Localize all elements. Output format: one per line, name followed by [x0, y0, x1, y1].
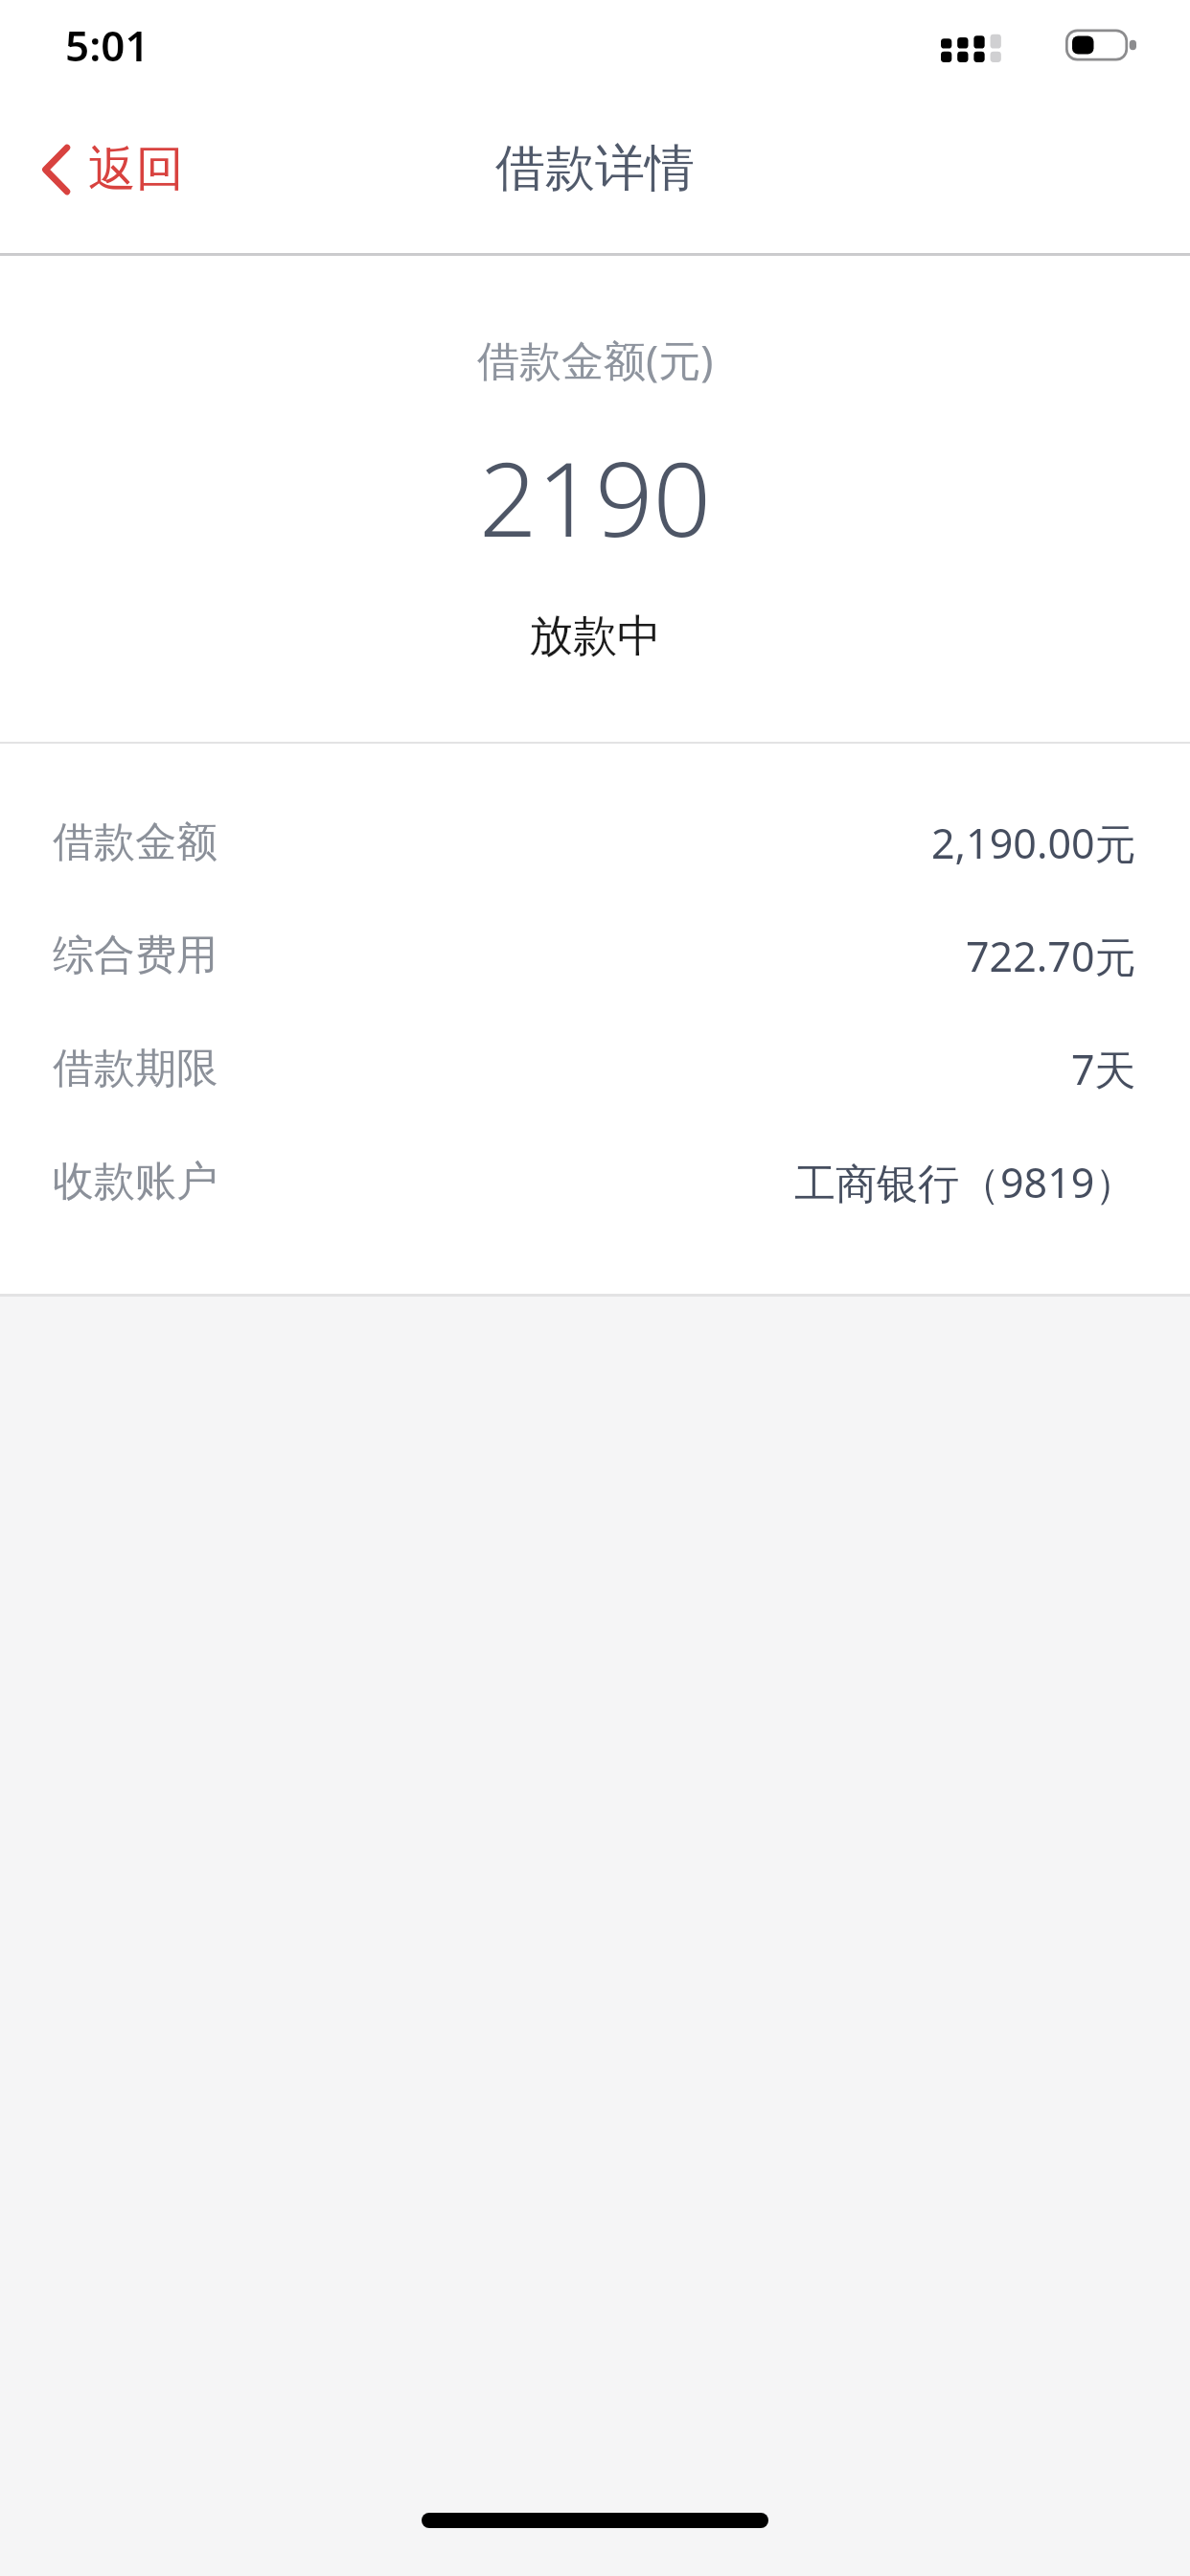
- staticText: 2,190.00元: [931, 815, 1136, 871]
- button[interactable]: 返回: [29, 124, 195, 215]
- staticText: 722.70元: [966, 928, 1136, 984]
- staticText: 5:01: [65, 16, 149, 74]
- staticText: 返回: [88, 139, 184, 199]
- button[interactable]: 收款账户: [0, 1125, 1190, 1238]
- staticText: 借款金额(元): [477, 331, 714, 388]
- staticText: 2190: [479, 428, 712, 566]
- staticText: 放款中: [529, 609, 661, 664]
- staticText: 收款账户: [53, 1156, 217, 1207]
- staticText: 借款期限: [53, 1043, 217, 1094]
- staticText: 借款金额: [53, 816, 217, 868]
- staticText: 7天: [1071, 1041, 1136, 1097]
- staticText: 综合费用: [53, 930, 217, 981]
- staticText: 借款详情: [495, 137, 695, 200]
- staticText: 工商银行（9819）: [794, 1154, 1136, 1210]
- button[interactable]: 综合费用: [0, 899, 1190, 1012]
- button[interactable]: 借款期限: [0, 1012, 1190, 1125]
- button[interactable]: 借款金额: [0, 786, 1190, 899]
